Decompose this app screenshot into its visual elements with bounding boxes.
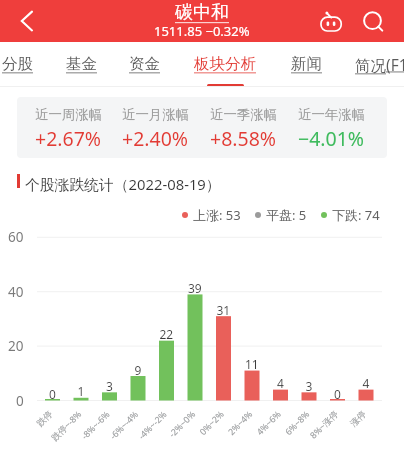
staticText: 分股: [2, 54, 33, 74]
staticText: 个股涨跌统计（2022-08-19）: [25, 174, 221, 194]
button[interactable]: 基金: [56, 42, 107, 89]
staticText: +2.40%: [122, 125, 189, 152]
staticText: 近一月涨幅: [122, 106, 189, 123]
staticText: +2.67%: [35, 125, 102, 152]
button[interactable]: 分股: [0, 42, 43, 89]
staticText: 碳中和: [175, 1, 229, 24]
staticText: 基金: [66, 54, 97, 74]
staticText: 近一季涨幅: [210, 106, 277, 123]
button[interactable]: Back: [6, 0, 46, 42]
button[interactable]: 简况(F1: [345, 42, 404, 89]
button[interactable]: 板块分析: [184, 42, 266, 89]
staticText: 上涨: 53: [193, 206, 241, 224]
staticText: 近一周涨幅: [35, 106, 102, 123]
staticText: 下跌: 74: [332, 206, 380, 224]
staticText: 1511.85 −0.32%: [154, 22, 250, 40]
staticText: 近一年涨幅: [298, 106, 365, 123]
button[interactable]: Search: [356, 0, 390, 42]
staticText: −4.01%: [298, 125, 365, 152]
staticText: 简况(F1: [355, 54, 404, 75]
staticText: +8.58%: [210, 125, 277, 152]
staticText: 资金: [129, 54, 160, 74]
staticText: 新闻: [291, 54, 322, 74]
button[interactable]: AI assistant: [315, 0, 349, 42]
staticText: 板块分析: [194, 54, 256, 74]
button[interactable]: 资金: [119, 42, 170, 89]
staticText: 平盘: 5: [266, 206, 307, 224]
button[interactable]: 新闻: [281, 42, 332, 89]
